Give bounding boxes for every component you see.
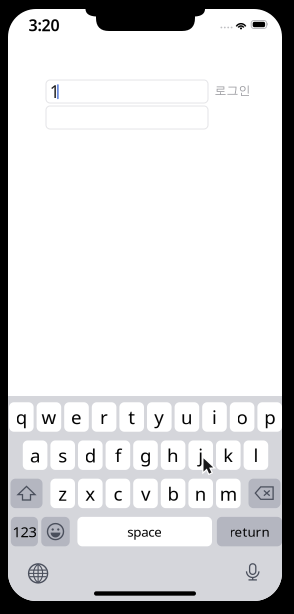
button[interactable]: o [230, 402, 254, 432]
button[interactable]: h [161, 440, 185, 470]
staticText: u [181, 405, 193, 429]
staticText: x [85, 481, 95, 506]
staticText: e [71, 405, 82, 429]
staticText: 로그인 [214, 83, 250, 98]
staticText: h [167, 443, 179, 468]
button[interactable]: Shift [10, 479, 42, 508]
staticText: m [220, 481, 237, 506]
staticText: l [253, 443, 258, 468]
staticText: b [168, 481, 179, 506]
button[interactable]: a [23, 440, 47, 470]
staticText: 123 [12, 522, 36, 541]
button[interactable]: s [50, 440, 75, 470]
button[interactable]: c [106, 479, 130, 508]
button[interactable]: Emoji [41, 517, 70, 546]
staticText: t [128, 405, 135, 429]
button[interactable]: m [216, 479, 241, 508]
staticText: j [198, 443, 203, 468]
button[interactable]: g [133, 440, 158, 470]
button[interactable]: i [202, 402, 227, 432]
button[interactable]: return [217, 517, 282, 546]
button[interactable]: z [50, 479, 75, 508]
staticText: d [85, 443, 96, 468]
staticText: i [212, 405, 217, 429]
staticText: a [30, 443, 40, 468]
button[interactable]: j [188, 440, 213, 470]
staticText: 3:20 [28, 14, 59, 36]
button[interactable]: n [188, 479, 213, 508]
staticText: g [140, 443, 151, 468]
button[interactable]: p [257, 402, 282, 432]
staticText: n [195, 481, 207, 506]
staticText: w [41, 405, 56, 429]
button[interactable]: e [64, 402, 89, 432]
staticText: s [58, 443, 67, 468]
staticText: y [154, 405, 164, 429]
button[interactable]: l [244, 440, 268, 470]
button[interactable]: Next keyboard [29, 564, 48, 583]
staticText: o [237, 405, 248, 429]
staticText: 1 [50, 80, 60, 103]
staticText: k [223, 443, 233, 468]
button[interactable]: b [161, 479, 185, 508]
staticText: return [229, 523, 269, 540]
button[interactable]: y [147, 402, 172, 432]
staticText: v [141, 481, 150, 506]
button[interactable]: 123 [11, 517, 38, 546]
button[interactable]: t [119, 402, 144, 432]
button[interactable]: space [77, 517, 212, 546]
button[interactable]: f [106, 440, 130, 470]
button[interactable]: k [216, 440, 241, 470]
button[interactable]: u [175, 402, 199, 432]
staticText: r [100, 405, 108, 429]
button[interactable]: d [78, 440, 103, 470]
staticText: c [113, 481, 122, 506]
button[interactable]: x [78, 479, 103, 508]
button[interactable]: r [92, 402, 116, 432]
button[interactable]: q [9, 402, 34, 432]
button[interactable]: Delete [248, 479, 280, 508]
button[interactable]: w [37, 402, 61, 432]
staticText: p [264, 405, 275, 429]
button[interactable]: Dictation [245, 562, 260, 581]
staticText: q [16, 405, 27, 429]
staticText: space [127, 523, 162, 540]
button[interactable]: v [133, 479, 158, 508]
staticText: f [115, 443, 121, 468]
staticText: z [58, 481, 67, 506]
button[interactable]: 로그인 [214, 83, 250, 98]
